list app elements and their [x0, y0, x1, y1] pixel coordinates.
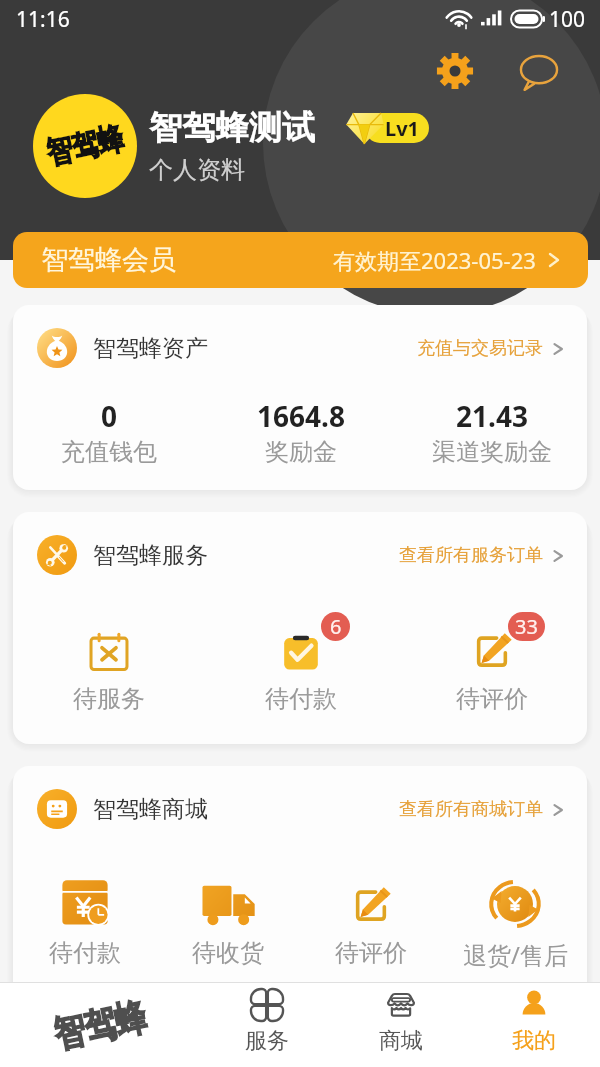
button[interactable]: 服务: [200, 983, 334, 1067]
staticText: 待服务: [73, 684, 145, 714]
button[interactable]: 21.43: [396, 397, 587, 467]
staticText: 21.43: [456, 397, 528, 435]
staticText: Lv1: [385, 115, 420, 142]
staticText: 待付款: [49, 938, 121, 968]
staticText: 智驾蜂: [43, 118, 127, 173]
staticText: 待评价: [335, 938, 407, 968]
button[interactable]: 待收货: [156, 877, 299, 968]
staticText: 退货/售后: [463, 938, 568, 971]
button[interactable]: 查看所有服务订单: [399, 544, 565, 567]
button[interactable]: 6: [205, 623, 396, 714]
staticText: 6: [330, 613, 342, 640]
staticText: 智驾蜂会员: [41, 243, 176, 277]
staticText: 智驾蜂商城: [93, 795, 208, 824]
button[interactable]: 1664.8: [205, 397, 396, 467]
button[interactable]: 退货/售后: [443, 877, 587, 971]
button[interactable]: 我的: [467, 983, 600, 1067]
button[interactable]: Settings: [432, 48, 478, 94]
staticText: 我的: [512, 1027, 556, 1055]
staticText: 有效期至2023-05-23: [333, 245, 536, 275]
staticText: 智驾蜂测试: [149, 107, 315, 149]
staticText: 奖励金: [265, 437, 337, 467]
staticText: 智驾蜂服务: [93, 541, 208, 570]
staticText: 待付款: [265, 684, 337, 714]
button[interactable]: 充值与交易记录: [417, 337, 565, 360]
staticText: 待收货: [192, 938, 264, 968]
staticText: 服务: [245, 1027, 289, 1055]
staticText: 个人资料: [149, 155, 245, 185]
staticText: 智驾蜂: [50, 993, 150, 1058]
button[interactable]: 查看所有商城订单: [399, 798, 565, 821]
staticText: 待评价: [456, 684, 528, 714]
staticText: 1664.8: [257, 397, 345, 435]
button[interactable]: 33: [396, 623, 587, 714]
button[interactable]: 待服务: [13, 623, 205, 714]
staticText: 100: [549, 5, 586, 34]
staticText: 充值钱包: [61, 437, 157, 467]
button[interactable]: Messages: [516, 48, 562, 94]
staticText: 渠道奖励金: [432, 437, 552, 467]
button[interactable]: Home: [0, 983, 200, 1067]
staticText: 33: [515, 613, 538, 640]
button[interactable]: 0: [13, 397, 205, 467]
staticText: 充值与交易记录: [417, 337, 543, 360]
button[interactable]: 待付款: [13, 877, 156, 968]
staticText: 查看所有商城订单: [399, 798, 543, 821]
staticText: 11:16: [16, 5, 70, 34]
button[interactable]: 智驾蜂: [33, 94, 429, 198]
staticText: 商城: [379, 1027, 423, 1055]
staticText: 查看所有服务订单: [399, 544, 543, 567]
staticText: 0: [101, 397, 118, 435]
staticText: 智驾蜂资产: [93, 334, 208, 363]
button[interactable]: 待评价: [299, 877, 443, 968]
button[interactable]: 智驾蜂会员: [13, 232, 588, 288]
button[interactable]: 商城: [334, 983, 467, 1067]
